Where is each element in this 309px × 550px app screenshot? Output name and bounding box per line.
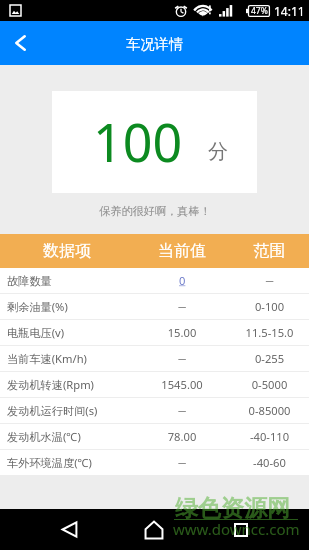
staticText: 车况详情 [126, 35, 184, 53]
button[interactable]: Back [41, 509, 97, 550]
staticText: 数据项 [0, 241, 134, 261]
staticText: 保养的很好啊，真棒！ [99, 204, 211, 218]
button[interactable]: 发动机水温(℃) [0, 424, 309, 450]
button[interactable]: 电瓶电压(v) [0, 320, 309, 346]
staticText: 绿色资源网 [175, 494, 290, 523]
staticText: 0-255 [230, 351, 309, 366]
staticText: -40-110 [230, 429, 309, 444]
button[interactable]: Recent apps [213, 509, 269, 550]
staticText: -40-60 [230, 455, 309, 470]
staticText: 15.00 [134, 325, 230, 340]
staticText: 14:11 [274, 3, 305, 19]
staticText: 故障数量 [7, 274, 134, 288]
staticText: 电瓶电压(v) [7, 325, 134, 340]
staticText: 范围 [230, 241, 309, 261]
staticText: 当前值 [134, 241, 230, 261]
staticText: — [230, 275, 309, 286]
staticText: 11.5-15.0 [230, 325, 309, 340]
staticText: — [134, 301, 230, 312]
button[interactable]: 车外环境温度(℃) [0, 450, 309, 476]
button[interactable]: Home [126, 509, 182, 550]
staticText: 剩余油量(%) [7, 299, 134, 314]
staticText: 发动机转速(Rpm) [7, 377, 134, 392]
button[interactable]: 发动机运行时间(s) [0, 398, 309, 424]
staticText: — [134, 405, 230, 416]
button[interactable]: Back [0, 21, 40, 65]
button[interactable]: 发动机转速(Rpm) [0, 372, 309, 398]
staticText: — [134, 457, 230, 468]
staticText: 分 [208, 139, 228, 164]
staticText: 发动机运行时间(s) [7, 403, 134, 418]
staticText: 0-5000 [230, 377, 309, 392]
staticText: 47% [251, 5, 268, 17]
staticText: 100 [93, 106, 183, 177]
staticText: 车外环境温度(℃) [7, 455, 134, 470]
button[interactable]: 当前车速(Km/h) [0, 346, 309, 372]
staticText: 0 [179, 273, 186, 288]
button[interactable]: 故障数量 [0, 268, 309, 294]
staticText: 78.00 [134, 429, 230, 444]
staticText: www.downcc.com [173, 519, 300, 539]
staticText: 0-85000 [230, 403, 309, 418]
staticText: 0-100 [230, 299, 309, 314]
staticText: — [134, 353, 230, 364]
staticText: 1545.00 [134, 377, 230, 392]
staticText: 发动机水温(℃) [7, 429, 134, 444]
button[interactable]: 剩余油量(%) [0, 294, 309, 320]
staticText: 当前车速(Km/h) [7, 351, 134, 366]
